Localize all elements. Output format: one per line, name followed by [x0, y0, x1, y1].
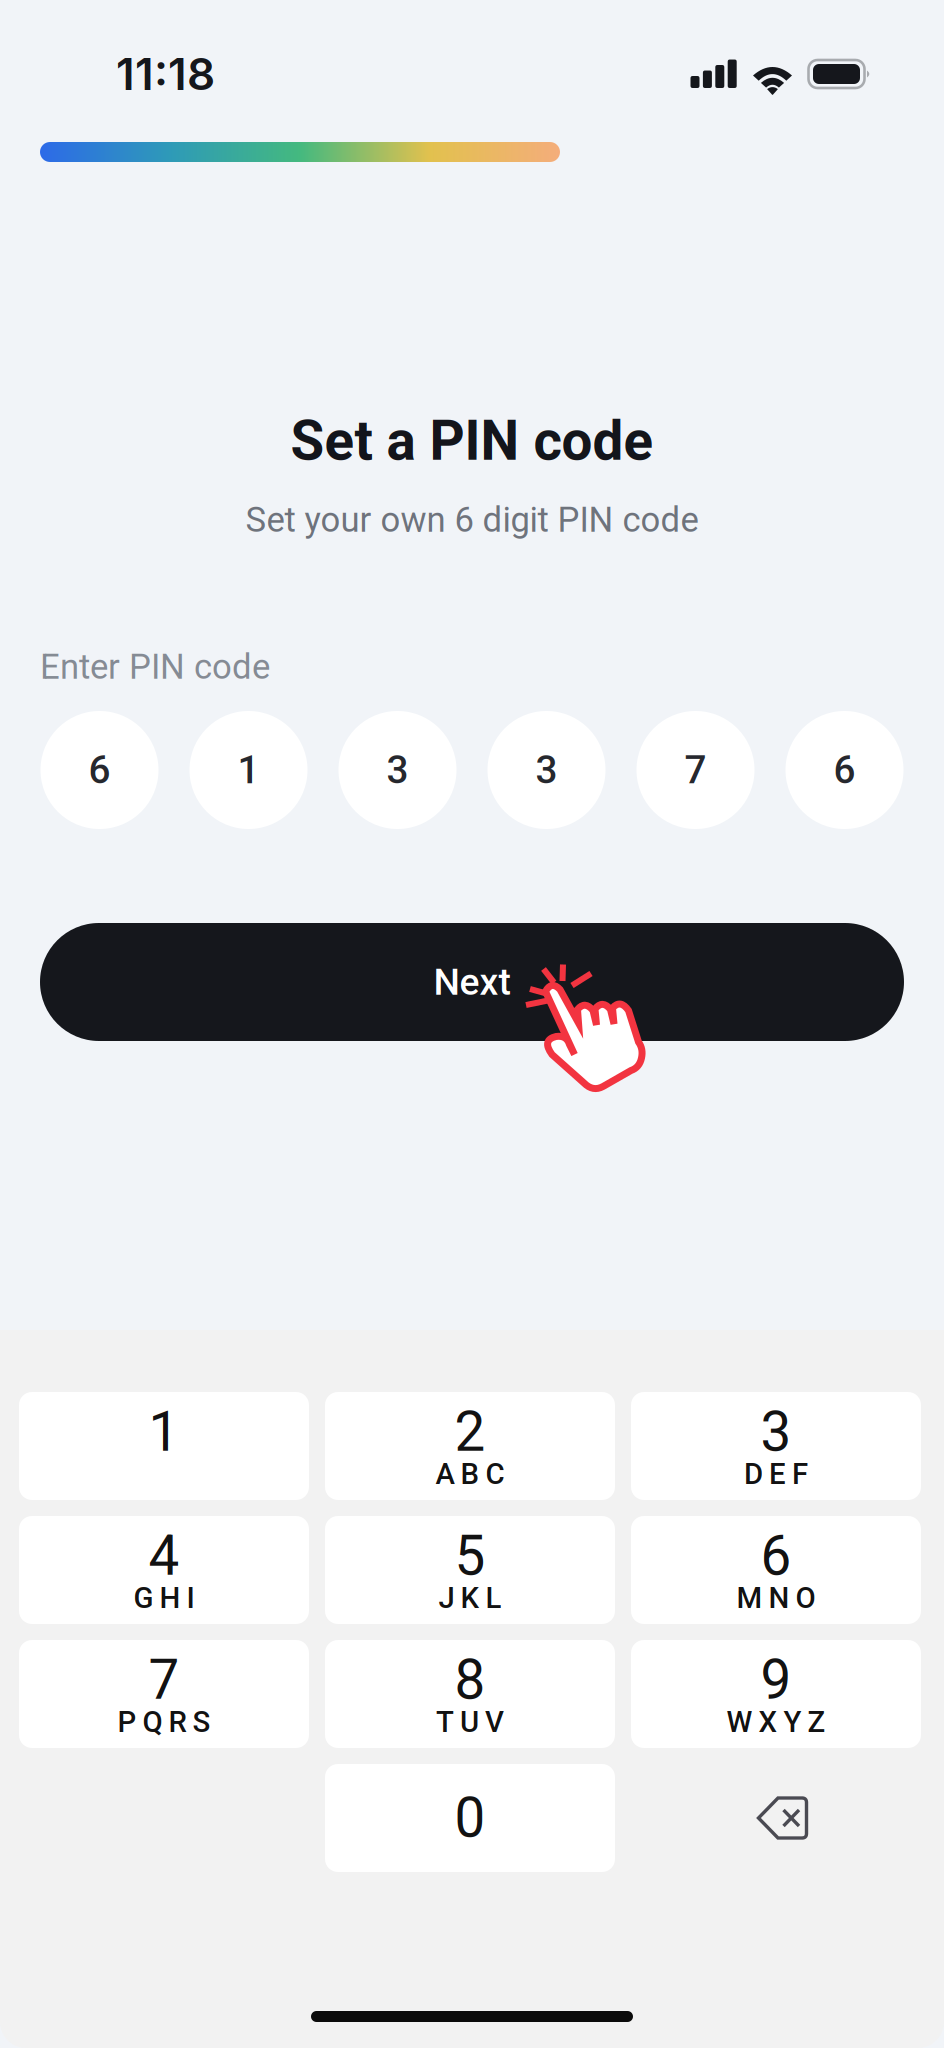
staticText: 11:18 [116, 47, 215, 101]
staticText: 4 [148, 1524, 179, 1588]
staticText: D E F [744, 1457, 808, 1491]
staticText: T U V [436, 1705, 504, 1739]
button[interactable]: 2 [325, 1392, 615, 1500]
staticText: 2 [454, 1400, 485, 1464]
staticText: 9 [760, 1648, 791, 1712]
button[interactable]: 9 [631, 1640, 921, 1748]
staticText: Set a PIN code [290, 409, 653, 473]
staticText: 6 [760, 1524, 791, 1588]
staticText: 3 [535, 747, 557, 793]
button[interactable]: 7 [19, 1640, 309, 1748]
staticText: 7 [148, 1648, 179, 1712]
staticText: 0 [454, 1786, 485, 1850]
staticText: W X Y Z [726, 1705, 825, 1739]
button[interactable]: 0 [325, 1764, 615, 1872]
button[interactable]: 4 [19, 1516, 309, 1624]
staticText: 6 [833, 747, 855, 793]
staticText: P Q R S [117, 1705, 210, 1739]
staticText: 8 [454, 1648, 485, 1712]
staticText: A B C [435, 1457, 504, 1491]
staticText: M N O [736, 1581, 815, 1615]
staticText: 3 [760, 1400, 791, 1464]
staticText: 6 [88, 747, 110, 793]
staticText: Enter PIN code [40, 647, 270, 687]
staticText: 5 [454, 1524, 485, 1588]
staticText: 3 [386, 747, 408, 793]
button[interactable]: Delete [631, 1764, 921, 1872]
button[interactable]: 8 [325, 1640, 615, 1748]
staticText: 1 [237, 747, 259, 793]
button[interactable]: 6 [631, 1516, 921, 1624]
staticText: Set your own 6 digit PIN code [245, 500, 698, 540]
button[interactable]: 1 [19, 1392, 309, 1500]
button[interactable]: 5 [325, 1516, 615, 1624]
staticText: G H I [133, 1581, 194, 1615]
staticText: 7 [684, 747, 706, 793]
staticText: 1 [148, 1400, 179, 1464]
button[interactable]: 3 [631, 1392, 921, 1500]
staticText: J K L [438, 1581, 501, 1615]
staticText: Next [433, 960, 510, 1004]
button[interactable]: Next [40, 923, 904, 1041]
